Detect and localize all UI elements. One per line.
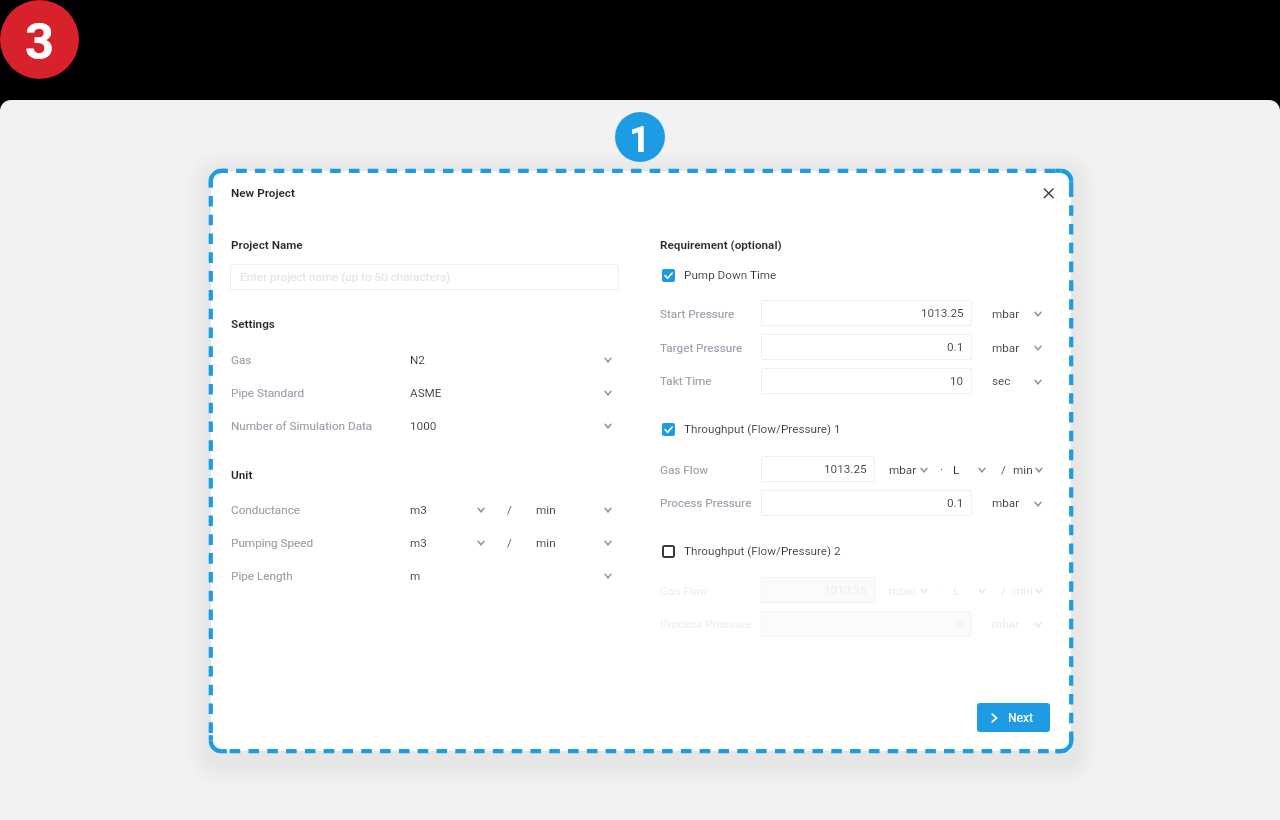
button[interactable] — [988, 490, 1046, 516]
staticText: mbar — [992, 617, 1020, 631]
staticText: 0 — [957, 617, 964, 631]
staticText: Requirement (optional) — [660, 238, 782, 252]
staticText: L — [953, 584, 960, 598]
button[interactable] — [231, 499, 620, 521]
staticText: m — [410, 569, 421, 583]
staticText: Process Pressure — [660, 496, 752, 510]
button[interactable] — [950, 456, 990, 482]
button[interactable]: Step 3 — [0, 0, 79, 79]
staticText: L — [953, 463, 960, 477]
staticText: sec — [992, 374, 1011, 388]
staticText: Gas Flow — [660, 584, 709, 598]
staticText: 0.1 — [947, 496, 964, 510]
staticText: 1000 — [410, 419, 437, 433]
staticText: / — [507, 503, 512, 517]
staticText: 1013.25 — [824, 462, 867, 476]
staticText: Takt Time — [660, 374, 712, 388]
staticText: mbar — [889, 584, 917, 598]
staticText: Process Pressure — [660, 617, 752, 631]
staticText: min — [536, 503, 556, 517]
staticText: 10 — [950, 374, 964, 388]
staticText: Pump Down Time — [684, 268, 777, 282]
staticText: Number of Simulation Data — [231, 419, 373, 433]
button[interactable] — [231, 565, 620, 587]
staticText: Throughput (Flow/Pressure) 2 — [684, 544, 841, 558]
button[interactable]: 1013.25 — [761, 300, 972, 326]
staticText: ASME — [410, 386, 442, 400]
staticText: / — [1001, 584, 1006, 598]
staticText: · — [940, 463, 944, 477]
staticText: min — [1013, 584, 1033, 598]
button[interactable] — [950, 577, 990, 603]
staticText: mbar — [992, 341, 1020, 355]
staticText: Gas — [231, 353, 252, 367]
staticText: min — [536, 536, 556, 550]
staticText: mbar — [992, 307, 1020, 321]
staticText: Enter project name (up to 50 characters) — [240, 270, 451, 284]
button[interactable] — [662, 269, 862, 283]
staticText: New Project — [231, 186, 295, 200]
button[interactable] — [231, 349, 620, 371]
button[interactable]: Close — [1036, 181, 1061, 206]
button[interactable] — [977, 703, 1050, 732]
staticText: Start Pressure — [660, 307, 735, 321]
button[interactable]: 0.1 — [761, 490, 972, 516]
staticText: 3 — [25, 12, 55, 71]
staticText: 1013.25 — [824, 583, 867, 597]
button[interactable] — [988, 611, 1046, 637]
button[interactable] — [988, 300, 1046, 326]
button[interactable]: 1013.25 — [761, 456, 875, 482]
staticText: 0.1 — [947, 340, 964, 354]
staticText: Pipe Length — [231, 569, 293, 583]
button[interactable] — [231, 382, 620, 404]
button[interactable] — [231, 415, 620, 437]
button[interactable]: Step 1 — [615, 112, 665, 162]
staticText: Unit — [231, 468, 253, 482]
staticText: mbar — [889, 463, 917, 477]
button[interactable] — [231, 532, 620, 554]
staticText: 1013.25 — [921, 306, 964, 320]
button[interactable] — [662, 423, 862, 437]
button[interactable] — [988, 368, 1046, 394]
staticText: Project Name — [231, 238, 303, 252]
button[interactable] — [1008, 577, 1046, 603]
staticText: Throughput (Flow/Pressure) 1 — [684, 422, 841, 436]
staticText: Pipe Standard — [231, 386, 305, 400]
staticText: N2 — [410, 353, 425, 367]
staticText: m3 — [410, 536, 427, 550]
button[interactable] — [662, 545, 862, 559]
button[interactable]: 0.1 — [761, 334, 972, 360]
staticText: min — [1013, 463, 1033, 477]
staticText: Target Pressure — [660, 341, 743, 355]
button[interactable] — [884, 456, 930, 482]
button[interactable] — [884, 577, 930, 603]
staticText: m3 — [410, 503, 427, 517]
staticText: Next — [1008, 711, 1033, 725]
staticText: Pumping Speed — [231, 536, 314, 550]
staticText: Conductance — [231, 503, 301, 517]
staticText: Gas Flow — [660, 463, 709, 477]
button[interactable] — [1008, 456, 1046, 482]
staticText: / — [507, 536, 512, 550]
button[interactable] — [988, 334, 1046, 360]
button[interactable]: 10 — [761, 368, 972, 394]
staticText: Settings — [231, 317, 275, 331]
staticText: mbar — [992, 496, 1020, 510]
button[interactable]: Enter project name (up to 50 characters) — [230, 264, 619, 290]
staticText: 1 — [629, 118, 651, 161]
staticText: / — [1001, 463, 1006, 477]
